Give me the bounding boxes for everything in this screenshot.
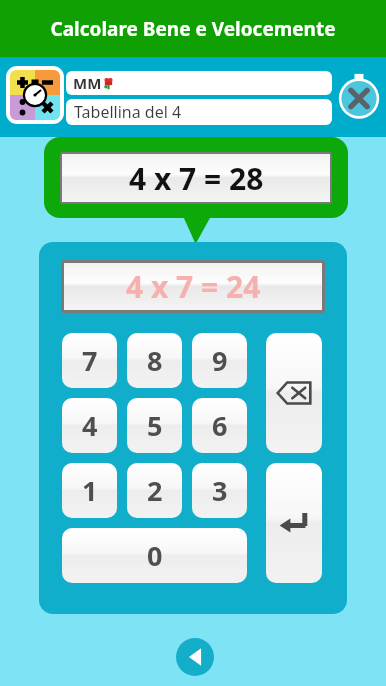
button[interactable]: 3	[192, 463, 247, 518]
button[interactable]: Chiudi	[337, 74, 381, 118]
button[interactable]: App icon	[6, 66, 64, 124]
button[interactable]: 7	[62, 333, 117, 388]
staticText: 4 x 7 = 28	[129, 158, 264, 199]
staticText: 7	[82, 342, 98, 379]
staticText: 2	[147, 472, 163, 509]
button[interactable]: 9	[192, 333, 247, 388]
button[interactable]: MM	[66, 71, 332, 95]
staticText: 4	[82, 407, 98, 444]
staticText: 3	[212, 472, 228, 509]
button[interactable]: Cancella	[266, 333, 322, 453]
staticText: 8	[147, 342, 163, 379]
button[interactable]: 4	[62, 398, 117, 453]
staticText: Tabellina del 4	[74, 101, 182, 123]
staticText: 6	[212, 407, 228, 444]
button[interactable]: 2	[127, 463, 182, 518]
staticText: 4 x 7 = 24	[126, 266, 261, 307]
button[interactable]: 1	[62, 463, 117, 518]
button[interactable]: Invio	[266, 463, 322, 583]
staticText: Calcolare Bene e Velocemente	[50, 16, 336, 42]
button[interactable]: Tabellina del 4	[66, 99, 332, 125]
button[interactable]: 8	[127, 333, 182, 388]
button[interactable]: 6	[192, 398, 247, 453]
button[interactable]: 0	[62, 528, 247, 583]
staticText: 9	[212, 342, 228, 379]
staticText: 1	[82, 472, 98, 509]
button[interactable]: 4 x 7 = 24	[64, 263, 322, 310]
staticText: MM	[73, 73, 102, 93]
staticText: 5	[147, 407, 163, 444]
button[interactable]: 5	[127, 398, 182, 453]
button[interactable]: Indietro	[176, 638, 214, 676]
staticText: 0	[147, 537, 163, 574]
